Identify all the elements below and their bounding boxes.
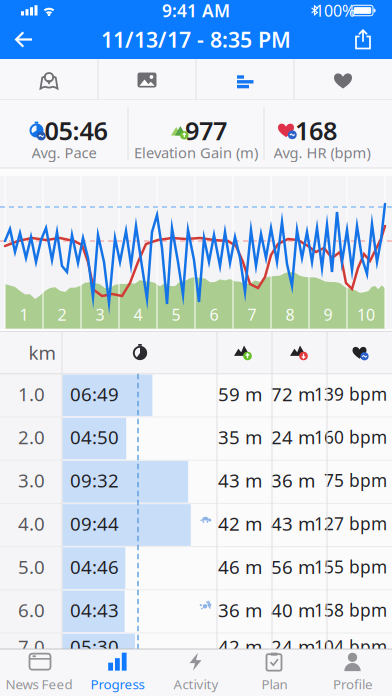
staticText: 04:43 xyxy=(70,597,119,622)
staticText: 2 xyxy=(57,304,66,325)
staticText: 3 xyxy=(95,304,104,325)
staticText: Profile xyxy=(333,675,373,693)
staticText: 42 m xyxy=(218,511,262,536)
staticText: 100% xyxy=(315,0,355,21)
button[interactable]: Plan xyxy=(235,649,313,696)
staticText: 127 bpm xyxy=(314,512,387,535)
staticText: 3.0 xyxy=(18,468,45,493)
staticText: 4 xyxy=(133,304,142,325)
staticText: 1 xyxy=(19,304,28,325)
staticText: Avg. Pace xyxy=(31,143,96,162)
staticText: Progress xyxy=(90,675,144,693)
staticText: 09:44 xyxy=(70,511,119,536)
staticText: Activity xyxy=(173,675,218,693)
button[interactable]: Splits xyxy=(196,59,294,100)
staticText: 72 m xyxy=(271,381,315,406)
button[interactable]: Photos xyxy=(98,59,196,100)
button[interactable]: Heart rate xyxy=(294,59,392,100)
button[interactable]: News Feed xyxy=(0,649,78,696)
staticText: 43 m xyxy=(218,468,262,493)
staticText: 56 m xyxy=(271,554,315,579)
staticText: 36 m xyxy=(218,597,262,622)
staticText: 09:32 xyxy=(70,468,119,493)
staticText: 06:49 xyxy=(70,381,119,406)
staticText: 42 m xyxy=(218,634,262,659)
staticText: 1.0 xyxy=(18,381,45,406)
staticText: 4.0 xyxy=(18,511,45,536)
button[interactable]: Progress xyxy=(78,649,156,696)
staticText: Elevation Gain (m) xyxy=(134,143,258,162)
staticText: 04:46 xyxy=(70,554,119,579)
staticText: 43 m xyxy=(271,511,315,536)
staticText: 7 xyxy=(247,304,256,325)
staticText: 6.0 xyxy=(18,597,45,622)
staticText: 35 m xyxy=(218,425,262,449)
staticText: 168 xyxy=(295,114,337,147)
staticText: 10 xyxy=(357,304,375,325)
staticText: 7.0 xyxy=(18,634,45,659)
button[interactable]: Activity xyxy=(157,649,235,696)
staticText: 158 bpm xyxy=(314,598,387,621)
staticText: 04:50 xyxy=(70,425,119,449)
staticText: 46 m xyxy=(218,554,262,579)
button[interactable]: Profile xyxy=(314,649,392,696)
staticText: 24 m xyxy=(271,425,315,449)
staticText: 155 bpm xyxy=(314,555,387,578)
staticText: km xyxy=(28,340,55,365)
staticText: 5.0 xyxy=(18,554,45,579)
staticText: 05:46 xyxy=(44,114,107,147)
staticText: 139 bpm xyxy=(314,382,387,405)
staticText: 160 bpm xyxy=(314,426,387,449)
staticText: 11/13/17 - 8:35 PM xyxy=(101,25,291,54)
staticText: 75 bpm xyxy=(324,469,387,492)
staticText: 9:41 AM xyxy=(162,0,230,22)
staticText: 104 bpm xyxy=(314,635,387,658)
staticText: 40 m xyxy=(271,597,315,622)
button[interactable]: Map xyxy=(0,59,98,100)
staticText: 977 xyxy=(185,114,227,147)
button[interactable]: Share xyxy=(341,20,385,59)
staticText: 8 xyxy=(285,304,294,325)
staticText: 9 xyxy=(323,304,332,325)
staticText: News Feed xyxy=(5,675,72,693)
staticText: 05:30 xyxy=(70,634,119,659)
staticText: 36 m xyxy=(271,468,315,493)
staticText: 59 m xyxy=(218,381,262,406)
staticText: 5 xyxy=(171,304,180,325)
staticText: Plan xyxy=(261,675,287,693)
staticText: Avg. HR (bpm) xyxy=(273,143,370,162)
button[interactable]: Back xyxy=(2,20,46,59)
staticText: 6 xyxy=(209,304,218,325)
staticText: 2.0 xyxy=(18,425,45,449)
staticText: 24 m xyxy=(271,634,315,659)
